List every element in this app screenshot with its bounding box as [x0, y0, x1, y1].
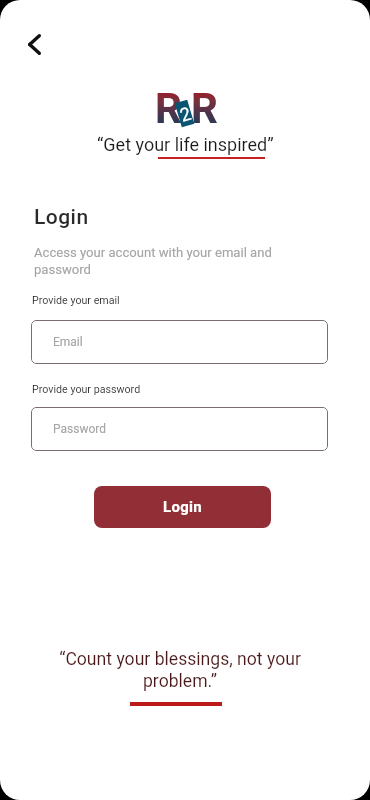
button[interactable]: Password: [31, 407, 328, 451]
button[interactable]: Back: [17, 27, 51, 61]
staticText: 2: [177, 102, 194, 127]
staticText: Login: [163, 498, 203, 516]
button[interactable]: Email: [31, 320, 328, 364]
staticText: R: [155, 84, 182, 133]
staticText: “Count your blessings, not your problem.…: [55, 649, 305, 692]
staticText: Password: [53, 422, 107, 436]
staticText: Provide your email: [32, 294, 120, 307]
button[interactable]: Login: [94, 486, 271, 528]
staticText: Provide your password: [32, 383, 141, 396]
staticText: “Get your life inspired”: [97, 134, 274, 155]
staticText: Access your account with your email and …: [34, 245, 279, 277]
staticText: Email: [53, 335, 83, 349]
staticText: Login: [34, 205, 89, 230]
staticText: R: [191, 84, 218, 133]
